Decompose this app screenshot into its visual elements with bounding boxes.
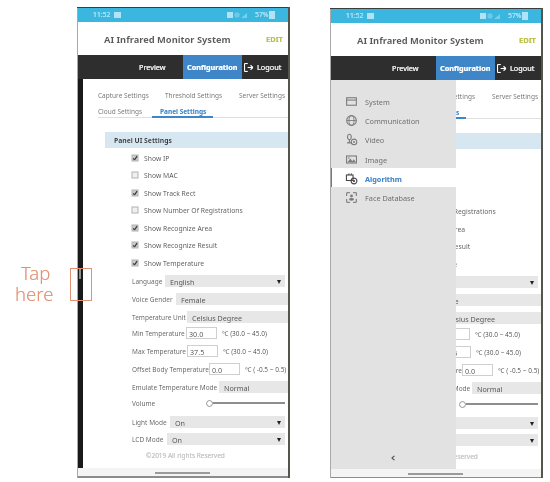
- button[interactable]: Show Number Of Registrations: [132, 205, 288, 215]
- button[interactable]: Server Settings: [239, 91, 285, 100]
- staticText: English: [170, 277, 195, 287]
- button[interactable]: Image: [330, 149, 456, 168]
- button[interactable]: Show IP: [132, 153, 288, 163]
- staticText: Min Temperature: [132, 329, 185, 338]
- button[interactable]: Panel Settings: [160, 107, 207, 116]
- staticText: Voice Gender: [132, 295, 173, 304]
- staticText: ℃ ( -0.5 ~ 0.5): [498, 366, 540, 375]
- button[interactable]: Logout: [495, 56, 541, 80]
- button[interactable]: 37.5: [440, 346, 471, 358]
- button[interactable]: Capture Settings: [351, 92, 402, 101]
- staticText: Tap: [21, 260, 51, 285]
- staticText: 11:52: [93, 10, 111, 19]
- button[interactable]: Configuration: [436, 56, 495, 80]
- button[interactable]: Show Number Of Registrations: [385, 206, 541, 216]
- button[interactable]: Preview: [127, 55, 177, 79]
- button[interactable]: 37.5: [187, 345, 218, 357]
- button[interactable]: Video: [330, 129, 456, 148]
- button[interactable]: Panel Settings: [413, 108, 460, 117]
- button[interactable]: English: [418, 276, 538, 288]
- staticText: Communication: [365, 116, 420, 126]
- button[interactable]: Female: [176, 293, 288, 305]
- button[interactable]: Show MAC: [132, 170, 288, 180]
- button[interactable]: Show Temperature: [385, 259, 541, 269]
- staticText: AI Infrared Monitor System: [357, 34, 484, 47]
- button[interactable]: 30.0: [186, 327, 217, 339]
- button[interactable]: Cloud Settings: [351, 108, 396, 117]
- button[interactable]: Show Track Rect: [132, 188, 288, 198]
- button[interactable]: Server Settings: [492, 92, 538, 101]
- button[interactable]: Face Database: [330, 187, 456, 206]
- button[interactable]: Celsius Degree: [440, 312, 541, 324]
- button[interactable]: Female: [429, 294, 541, 306]
- button[interactable]: Communication: [330, 110, 456, 129]
- button[interactable]: EDIT: [266, 34, 283, 44]
- button[interactable]: Normal: [219, 381, 288, 393]
- button[interactable]: Show Recognize Result: [132, 240, 288, 250]
- button[interactable]: EDIT: [519, 35, 536, 45]
- staticText: Show Number Of Registrations: [397, 207, 496, 216]
- button[interactable]: System: [330, 91, 456, 110]
- staticText: 0.0: [212, 365, 223, 375]
- button[interactable]: Show MAC: [385, 171, 541, 181]
- button[interactable]: Show Temperature: [132, 258, 288, 268]
- staticText: ℃ (30.0 ~ 45.0): [475, 330, 520, 339]
- button[interactable]: 0.0: [209, 363, 240, 375]
- staticText: Image: [365, 155, 387, 165]
- staticText: Show Recognize Area: [144, 224, 213, 233]
- staticText: ℃ (30.0 ~ 45.0): [223, 347, 268, 356]
- button[interactable]: Cloud Settings: [98, 107, 143, 116]
- button[interactable]: Normal: [472, 382, 541, 394]
- staticText: ©2019 All rights Reserved: [399, 452, 478, 461]
- staticText: Logout: [510, 63, 535, 73]
- button[interactable]: Algorithm: [330, 168, 464, 187]
- button[interactable]: On: [167, 433, 285, 445]
- other: Back: [390, 455, 396, 461]
- button[interactable]: Show Recognize Area: [132, 223, 288, 233]
- button[interactable]: Show Track Rect: [385, 189, 541, 199]
- button[interactable]: 0.0: [462, 364, 493, 376]
- staticText: 30.0: [442, 330, 457, 340]
- button[interactable]: Show Recognize Area: [385, 224, 541, 234]
- button[interactable]: On: [170, 416, 285, 428]
- button[interactable]: 30.0: [439, 328, 470, 340]
- staticText: Normal: [477, 384, 503, 394]
- staticText: EDIT: [519, 35, 536, 45]
- button[interactable]: Logout: [242, 55, 288, 79]
- staticText: ℃ ( -0.5 ~ 0.5): [245, 365, 287, 374]
- staticText: Show Recognize Result: [397, 242, 471, 251]
- staticText: ℃ (30.0 ~ 45.0): [476, 348, 521, 357]
- button[interactable]: Threshold Settings: [165, 91, 223, 100]
- button[interactable]: On: [423, 417, 538, 429]
- button[interactable]: [206, 400, 213, 407]
- staticText: Show Number Of Registrations: [144, 206, 243, 215]
- button[interactable]: On: [420, 434, 538, 446]
- button[interactable]: Configuration: [183, 55, 242, 79]
- staticText: Emulate Temperature Mode: [385, 384, 471, 393]
- staticText: Show Recognize Area: [397, 225, 466, 234]
- staticText: Offset Body Temperature: [385, 366, 462, 375]
- staticText: Offset Body Temperature: [132, 365, 209, 374]
- button[interactable]: Threshold Settings: [418, 92, 476, 101]
- staticText: Configuration: [187, 62, 238, 72]
- button[interactable]: Capture Settings: [98, 91, 149, 100]
- staticText: 37.5: [190, 347, 205, 357]
- staticText: Preview: [139, 62, 166, 72]
- staticText: Face Database: [365, 193, 415, 203]
- button[interactable]: Celsius Degree: [187, 311, 288, 323]
- staticText: ©2019 All rights Reserved: [146, 451, 225, 460]
- button[interactable]: Show IP: [385, 154, 541, 164]
- staticText: Show IP: [144, 154, 170, 163]
- button[interactable]: Show Recognize Result: [385, 241, 541, 251]
- button[interactable]: [459, 401, 466, 408]
- button[interactable]: English: [165, 275, 285, 287]
- button[interactable]: Preview: [380, 56, 430, 80]
